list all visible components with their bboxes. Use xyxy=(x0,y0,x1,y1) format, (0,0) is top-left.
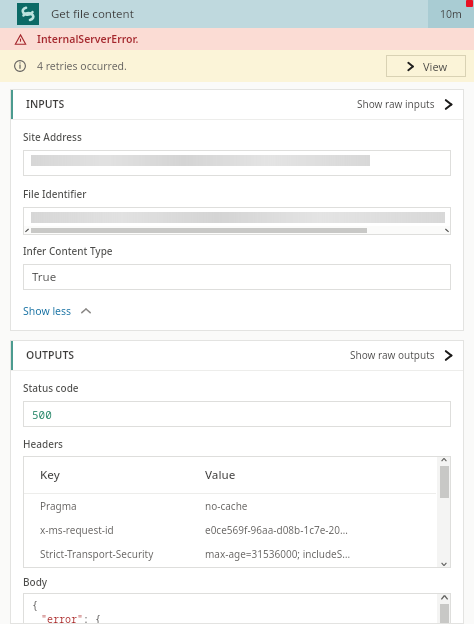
staticText: Site Address xyxy=(23,130,82,144)
staticText: x-ms-request-id xyxy=(40,523,114,537)
staticText: Body xyxy=(23,575,48,589)
staticText: e0ce569f-96aa-d08b-1c7e-20… xyxy=(205,523,348,537)
staticText: INPUTS xyxy=(26,97,65,111)
button[interactable]: Strict-Transport-Security xyxy=(23,542,436,566)
staticText: Get file content xyxy=(51,6,134,22)
staticText: Pragma xyxy=(40,499,77,513)
button[interactable]: Get file content xyxy=(0,0,474,28)
button[interactable]: INPUTS xyxy=(10,89,464,119)
staticText: max-age=31536000; includeS… xyxy=(205,547,351,561)
staticText: 10m xyxy=(440,7,462,21)
staticText: InternalServerError. xyxy=(37,32,139,46)
staticText: Value xyxy=(205,467,236,483)
staticText: Status code xyxy=(23,381,79,395)
staticText: : { xyxy=(83,612,101,624)
staticText: 500 xyxy=(32,407,52,422)
staticText: True xyxy=(32,269,57,285)
staticText: OUTPUTS xyxy=(26,348,75,362)
staticText: Show less xyxy=(23,304,72,318)
staticText: no-cache xyxy=(205,499,248,513)
staticText: View xyxy=(423,59,448,74)
staticText: Infer Content Type xyxy=(23,244,113,258)
staticText: 4 retries occurred. xyxy=(37,59,127,73)
staticText: Show raw outputs xyxy=(350,348,435,362)
staticText: Show raw inputs xyxy=(357,97,435,111)
button[interactable]: OUTPUTS xyxy=(10,340,464,370)
staticText: File Identifier xyxy=(23,187,87,201)
staticText: { xyxy=(32,598,38,612)
button[interactable]: Show less xyxy=(23,304,92,318)
staticText: Headers xyxy=(23,437,63,451)
staticText: Strict-Transport-Security xyxy=(40,547,154,561)
button[interactable]: Pragma xyxy=(23,494,436,518)
staticText: Key xyxy=(40,467,60,483)
staticText: "error" xyxy=(41,612,83,624)
button[interactable]: x-ms-request-id xyxy=(23,518,436,542)
button[interactable]: View xyxy=(386,55,466,77)
